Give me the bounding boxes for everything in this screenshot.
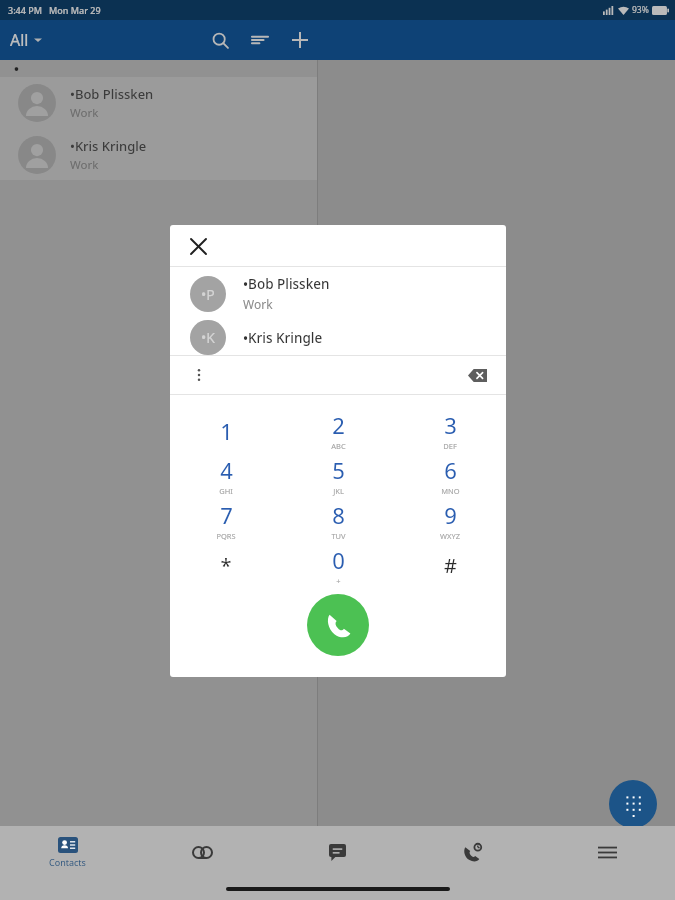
button[interactable]: Add contact (280, 20, 320, 60)
staticText: •Kris Kringle (243, 329, 323, 347)
staticText: 1 (220, 416, 233, 446)
staticText: • (14, 60, 19, 77)
button[interactable]: Dialpad (609, 780, 657, 828)
button[interactable]: Close (178, 226, 218, 266)
staticText: GHI (219, 486, 233, 496)
button[interactable]: 8 (282, 498, 394, 543)
staticText: •P (201, 285, 215, 304)
button[interactable]: Backspace (460, 358, 494, 392)
staticText: •Kris Kringle (70, 137, 147, 155)
staticText: 6 (444, 455, 457, 485)
button[interactable]: 7 (170, 498, 282, 543)
staticText: 3:44 PM Mon Mar 29 (8, 4, 101, 16)
staticText: •Bob Plissken (243, 275, 330, 293)
staticText: •K (201, 328, 215, 347)
button[interactable]: 5 (282, 453, 394, 498)
button[interactable]: 6 (394, 453, 506, 498)
button[interactable]: Tab (270, 826, 405, 878)
button[interactable]: •Bob Plissken (0, 77, 317, 129)
button[interactable]: Tab (405, 826, 540, 878)
staticText: MNO (441, 486, 460, 496)
button[interactable]: 1 (170, 408, 282, 453)
staticText: ABC (331, 441, 346, 451)
staticText: + (336, 576, 341, 586)
button[interactable]: 4 (170, 453, 282, 498)
staticText: 0 (332, 545, 345, 575)
staticText: WXYZ (440, 531, 460, 541)
staticText: PQRS (216, 531, 236, 541)
button[interactable]: •Kris Kringle (0, 129, 317, 180)
button[interactable]: •P (170, 267, 506, 320)
staticText: 8 (332, 500, 345, 530)
button[interactable]: More options (182, 358, 216, 392)
staticText: Work (70, 157, 99, 173)
staticText: 3 (444, 410, 457, 440)
button[interactable]: 3 (394, 408, 506, 453)
staticText: * (220, 552, 232, 579)
staticText: Work (70, 105, 99, 121)
button[interactable]: 9 (394, 498, 506, 543)
staticText: 4 (220, 455, 233, 485)
staticText: 2 (332, 410, 345, 440)
button[interactable]: Call (307, 594, 369, 656)
staticText: All (10, 29, 29, 51)
staticText: # (444, 552, 457, 579)
button[interactable]: Tab (540, 826, 675, 878)
button[interactable]: Tab (135, 826, 270, 878)
button[interactable]: Search (200, 20, 240, 60)
staticText: 93% (632, 4, 649, 16)
button[interactable]: 0 (282, 543, 394, 588)
button[interactable]: •K (170, 320, 506, 355)
staticText: Contacts (49, 856, 86, 868)
staticText: JKL (333, 486, 344, 496)
button[interactable]: Contacts (0, 826, 135, 878)
button[interactable]: All (10, 29, 42, 51)
button[interactable]: # (394, 543, 506, 588)
staticText: 5 (332, 455, 345, 485)
staticText: Work (243, 296, 273, 312)
staticText: TUV (331, 531, 346, 541)
button[interactable]: 2 (282, 408, 394, 453)
staticText: 9 (444, 500, 457, 530)
button[interactable]: Sort (240, 20, 280, 60)
staticText: DEF (443, 441, 457, 451)
staticText: 7 (220, 500, 233, 530)
staticText: •Bob Plissken (70, 85, 154, 103)
button[interactable]: * (170, 543, 282, 588)
